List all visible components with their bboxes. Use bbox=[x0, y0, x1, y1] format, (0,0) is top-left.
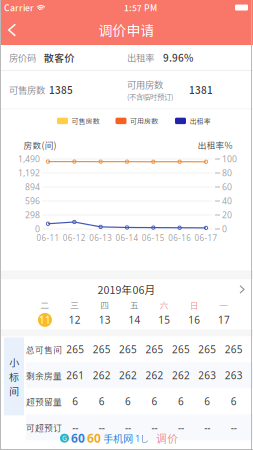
staticText: 6 bbox=[99, 395, 105, 408]
staticText: 1,192 bbox=[18, 167, 40, 179]
staticText: 40 bbox=[222, 195, 232, 207]
staticText: 6 bbox=[231, 395, 237, 408]
staticText: -- bbox=[204, 421, 210, 434]
staticText: 剩余房量 bbox=[26, 369, 62, 382]
staticText: 房数(间) bbox=[23, 139, 56, 151]
staticText: 可用房数 bbox=[127, 78, 163, 91]
staticText: 06-14 bbox=[115, 233, 138, 243]
staticText: 6 bbox=[204, 395, 210, 408]
staticText: 2019年06月 bbox=[97, 282, 155, 297]
staticText: 06-15 bbox=[142, 233, 165, 243]
button[interactable]: 15 bbox=[149, 311, 179, 328]
staticText: 262 bbox=[172, 369, 190, 382]
staticText: 06-13 bbox=[89, 233, 112, 243]
staticText: 手机网 bbox=[103, 431, 133, 445]
staticText: 6 bbox=[178, 395, 184, 408]
staticText: 0 bbox=[35, 223, 40, 235]
staticText: 596 bbox=[25, 195, 40, 207]
button[interactable]: 13 bbox=[90, 311, 120, 328]
staticText: 265 bbox=[198, 343, 216, 356]
staticText: 6 bbox=[72, 395, 78, 408]
staticText: Carrier bbox=[4, 1, 34, 14]
staticText: 265 bbox=[119, 343, 137, 356]
staticText: 可用房数 bbox=[130, 116, 158, 126]
staticText: 1:57 PM bbox=[124, 1, 157, 14]
staticText: 265 bbox=[66, 343, 84, 356]
staticText: 总可售间 bbox=[26, 343, 62, 356]
staticText: 60 bbox=[87, 430, 101, 446]
staticText: 可超预订 bbox=[26, 421, 62, 434]
staticText: 262 bbox=[93, 369, 111, 382]
staticText: 出租率% bbox=[197, 139, 232, 151]
staticText: 调价申请 bbox=[98, 20, 154, 40]
staticText: 16 bbox=[188, 313, 200, 327]
staticText: 06-17 bbox=[194, 233, 217, 243]
button[interactable]: Back bbox=[0, 15, 24, 45]
staticText: 262 bbox=[119, 369, 137, 382]
staticText: 0 bbox=[222, 223, 227, 235]
staticText: 标 bbox=[9, 369, 19, 384]
staticText: 06-11 bbox=[36, 233, 59, 243]
staticText: 263 bbox=[198, 369, 216, 382]
staticText: -- bbox=[99, 421, 105, 434]
staticText: 超预留量 bbox=[26, 395, 62, 408]
staticText: -- bbox=[125, 421, 131, 434]
staticText: -- bbox=[151, 421, 157, 434]
staticText: 调价 bbox=[156, 430, 178, 446]
staticText: 出租率 bbox=[127, 51, 154, 64]
staticText: 日 bbox=[190, 299, 199, 311]
staticText: 12 bbox=[69, 313, 81, 327]
staticText: 265 bbox=[145, 343, 163, 356]
staticText: -- bbox=[231, 421, 237, 434]
staticText: 265 bbox=[172, 343, 190, 356]
button[interactable]: 16 bbox=[179, 311, 209, 328]
staticText: 间 bbox=[9, 384, 19, 398]
staticText: 894 bbox=[25, 181, 40, 193]
staticText: 265 bbox=[93, 343, 111, 356]
staticText: 20 bbox=[222, 209, 232, 221]
staticText: 263 bbox=[225, 369, 243, 382]
staticText: 可售房数 bbox=[9, 83, 45, 96]
staticText: 17 bbox=[218, 313, 230, 327]
staticText: 1385 bbox=[49, 82, 73, 97]
button[interactable]: Next month bbox=[231, 279, 253, 299]
staticText: 15 bbox=[158, 313, 170, 327]
staticText: 房价码 bbox=[9, 51, 36, 64]
staticText: 298 bbox=[25, 209, 40, 221]
staticText: 6 bbox=[151, 395, 157, 408]
staticText: 80 bbox=[222, 167, 232, 179]
staticText: 60 bbox=[222, 181, 232, 193]
button[interactable]: 11 bbox=[30, 311, 60, 328]
staticText: 1381 bbox=[189, 82, 213, 97]
staticText: 6 bbox=[125, 395, 131, 408]
staticText: 14 bbox=[128, 313, 140, 327]
staticText: 261 bbox=[66, 369, 84, 382]
staticText: 100 bbox=[222, 153, 237, 165]
staticText: 六 bbox=[160, 299, 169, 311]
button[interactable]: 14 bbox=[120, 311, 149, 328]
staticText: 三 bbox=[70, 299, 79, 311]
staticText: 二 bbox=[40, 299, 49, 311]
staticText: -- bbox=[72, 421, 78, 434]
staticText: 13 bbox=[99, 313, 111, 327]
staticText: 可售房数 bbox=[71, 116, 99, 126]
staticText: 散客价 bbox=[44, 50, 74, 65]
staticText: 265 bbox=[225, 343, 243, 356]
button[interactable]: 12 bbox=[60, 311, 90, 328]
staticText: 出租率 bbox=[189, 116, 210, 126]
staticText: 9.96% bbox=[163, 50, 193, 65]
staticText: 1,490 bbox=[18, 153, 40, 165]
button[interactable]: 17 bbox=[209, 311, 239, 328]
staticText: -- bbox=[178, 421, 184, 434]
staticText: 60 bbox=[71, 430, 85, 446]
staticText: 06-12 bbox=[63, 233, 86, 243]
staticText: 262 bbox=[145, 369, 163, 382]
staticText: 11 bbox=[39, 313, 51, 327]
staticText: G bbox=[62, 434, 67, 443]
staticText: 四 bbox=[100, 299, 109, 311]
staticText: 1し bbox=[135, 432, 150, 444]
staticText: 小 bbox=[9, 355, 19, 369]
staticText: 一 bbox=[220, 299, 229, 311]
staticText: 06-16 bbox=[168, 233, 191, 243]
staticText: 五 bbox=[130, 299, 139, 311]
